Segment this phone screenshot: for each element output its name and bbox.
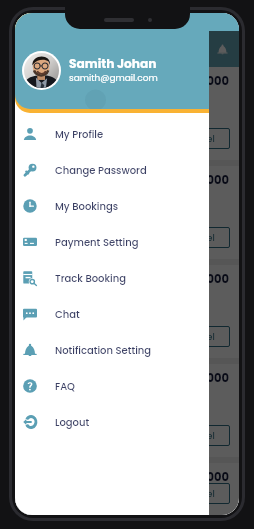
button[interactable]: Chat xyxy=(15,296,209,332)
staticText: Cancel xyxy=(181,487,215,500)
button[interactable]: My Profile xyxy=(15,116,209,152)
staticText: Cancel xyxy=(181,429,215,442)
button[interactable]: Cancel xyxy=(166,128,230,149)
staticText: ₹ 3,000 xyxy=(187,370,230,386)
button[interactable]: Payment Setting xyxy=(15,224,209,260)
staticText: Notification Setting xyxy=(55,343,152,357)
button[interactable]: Logout xyxy=(15,404,209,440)
button[interactable]: FAQ xyxy=(15,368,209,404)
staticText: Cancel xyxy=(181,132,215,145)
staticText: Logout xyxy=(55,415,90,429)
staticText: Track Booking xyxy=(55,271,126,285)
staticText: Samith Johan xyxy=(69,55,157,72)
staticText: Chat xyxy=(55,307,80,321)
button[interactable]: Cancel xyxy=(166,326,230,347)
button[interactable]: Change Password xyxy=(15,152,209,188)
button[interactable]: Cancel xyxy=(166,227,230,248)
staticText: My Profile xyxy=(55,127,104,141)
staticText: Cancel xyxy=(181,330,215,343)
staticText: FAQ xyxy=(55,379,75,393)
button[interactable]: Cancel xyxy=(166,425,230,446)
staticText: ₹ 3,000 xyxy=(187,271,230,287)
button[interactable]: Notifications xyxy=(210,37,234,61)
staticText: Cancel xyxy=(181,231,215,244)
staticText: Payment Setting xyxy=(55,235,139,249)
staticText: ₹ 3,000 xyxy=(187,172,230,188)
staticText: ₹ 3,000 xyxy=(187,73,230,89)
staticText: samith@gmail.com xyxy=(69,72,158,85)
button[interactable]: Notification Setting xyxy=(15,332,209,368)
button[interactable]: My Bookings xyxy=(15,188,209,224)
button[interactable]: Cancel xyxy=(166,483,230,504)
staticText: My Bookings xyxy=(55,199,119,213)
staticText: Change Password xyxy=(55,163,147,177)
staticText: ₹ 3,000 xyxy=(187,469,230,485)
button[interactable]: Track Booking xyxy=(15,260,209,296)
